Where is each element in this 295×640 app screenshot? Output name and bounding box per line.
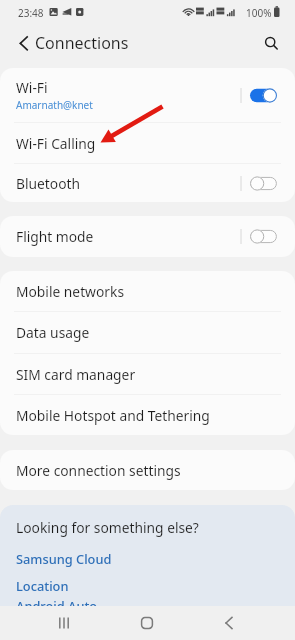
staticText: More connection settings: [16, 461, 181, 480]
staticText: 100%: [246, 6, 272, 20]
button[interactable]: SIM card manager: [0, 354, 295, 394]
staticText: Amarnath@knet: [16, 98, 93, 112]
button[interactable]: Bluetooth: [0, 164, 295, 202]
button[interactable]: Location: [16, 577, 69, 594]
button[interactable]: Mobile Hotspot and Tethering: [0, 395, 295, 435]
staticText: Flight mode: [16, 227, 94, 246]
staticText: 23:48: [18, 6, 44, 20]
button[interactable]: Search: [260, 28, 288, 56]
staticText: Location: [16, 577, 69, 594]
staticText: Wi-Fi: [16, 78, 48, 97]
button[interactable]: Navigate up: [10, 28, 38, 56]
staticText: Android Auto: [16, 597, 98, 614]
staticText: Data usage: [16, 323, 90, 342]
button[interactable]: Home: [123, 606, 171, 640]
button[interactable]: Wi-Fi Calling: [0, 123, 295, 163]
button[interactable]: Turn off: [250, 88, 277, 103]
button[interactable]: Turn on: [250, 176, 277, 191]
button[interactable]: Samsung Cloud: [16, 550, 112, 567]
button[interactable]: Recent apps: [40, 606, 88, 640]
button[interactable]: Turn on: [250, 229, 277, 244]
button[interactable]: Data usage: [0, 312, 295, 353]
staticText: SIM card manager: [16, 365, 136, 384]
staticText: Connections: [35, 32, 129, 54]
button[interactable]: Mobile networks: [0, 271, 295, 311]
staticText: Samsung Cloud: [16, 550, 112, 567]
staticText: Bluetooth: [16, 174, 81, 193]
button[interactable]: More connection settings: [0, 450, 295, 490]
staticText: Mobile networks: [16, 282, 124, 301]
button[interactable]: Back: [205, 606, 253, 640]
button[interactable]: Android Auto: [16, 597, 98, 614]
button[interactable]: Wi-Fi: [0, 68, 295, 122]
staticText: Mobile Hotspot and Tethering: [16, 406, 210, 425]
staticText: Looking for something else?: [16, 518, 199, 537]
staticText: Wi-Fi Calling: [16, 134, 96, 153]
button[interactable]: Flight mode: [0, 216, 295, 257]
